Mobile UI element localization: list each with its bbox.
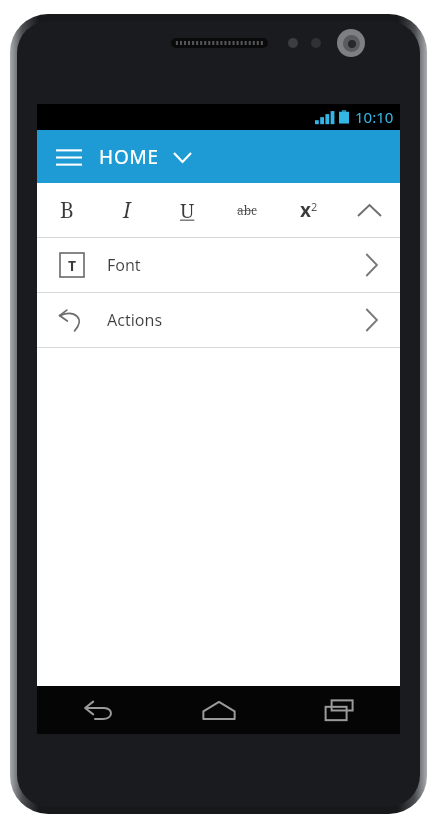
staticText: U — [180, 197, 195, 224]
button[interactable]: Open navigation menu — [49, 137, 89, 177]
button[interactable]: HOME — [99, 144, 192, 170]
button[interactable]: T — [37, 238, 400, 292]
button[interactable]: Strikethrough — [217, 183, 278, 237]
staticText: I — [123, 196, 131, 225]
button[interactable]: Actions — [37, 293, 400, 347]
staticText: T — [68, 256, 77, 275]
staticText: abc — [237, 202, 258, 218]
button[interactable]: Superscript — [278, 183, 339, 237]
button[interactable]: Home — [158, 686, 279, 734]
button[interactable]: Back — [37, 686, 158, 734]
button[interactable]: Bold — [37, 183, 97, 237]
staticText: B — [60, 196, 74, 225]
staticText: 10:10 — [355, 107, 394, 127]
staticText: Font — [107, 254, 141, 276]
button[interactable]: Collapse formatting toolbar — [339, 183, 400, 237]
staticText: HOME — [99, 144, 159, 170]
staticText: Actions — [107, 309, 163, 331]
staticText: x2 — [300, 197, 318, 223]
button[interactable]: Recent apps — [279, 686, 400, 734]
button[interactable]: Italic — [97, 183, 157, 237]
button[interactable]: Underline — [157, 183, 217, 237]
